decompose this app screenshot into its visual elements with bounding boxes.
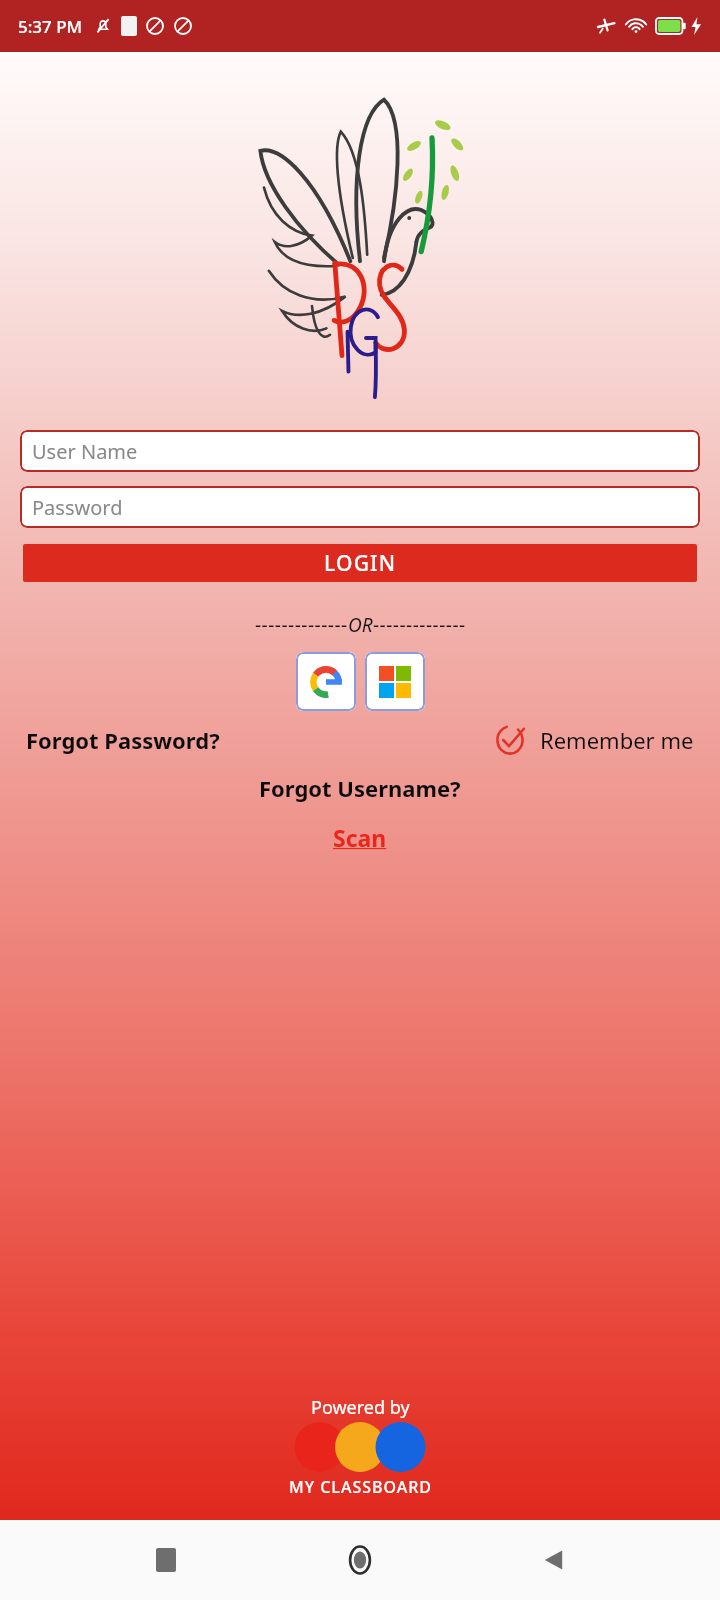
button[interactable]: Home <box>332 1532 388 1588</box>
staticText: -------------- <box>373 612 466 638</box>
button[interactable]: User Name <box>20 430 700 472</box>
button[interactable]: LOGIN <box>23 544 697 582</box>
button[interactable]: Forgot Username? <box>259 773 461 803</box>
staticText: Forgot Username? <box>259 773 461 803</box>
button[interactable]: Password <box>20 486 700 528</box>
staticText: Forgot Password? <box>26 725 220 755</box>
staticText: -------------- <box>255 612 348 638</box>
button[interactable]: Remember me <box>494 723 694 757</box>
staticText: 5:37 PM <box>18 15 83 38</box>
staticText: User Name <box>32 438 138 465</box>
button[interactable]: Scan <box>333 822 387 853</box>
button[interactable]: Back <box>526 1532 582 1588</box>
button[interactable]: Sign in with Microsoft <box>365 652 425 711</box>
staticText: MY CLASSBOARD <box>289 1476 432 1498</box>
staticText: Powered by <box>311 1395 410 1420</box>
staticText: Scan <box>333 822 387 853</box>
staticText: Password <box>32 494 123 521</box>
button[interactable]: Recent apps <box>138 1532 194 1588</box>
button[interactable]: Forgot Password? <box>26 725 220 755</box>
staticText: LOGIN <box>324 549 397 578</box>
staticText: Remember me <box>540 725 694 755</box>
button[interactable]: Sign in with Google <box>296 652 356 711</box>
staticText: OR <box>348 612 373 638</box>
